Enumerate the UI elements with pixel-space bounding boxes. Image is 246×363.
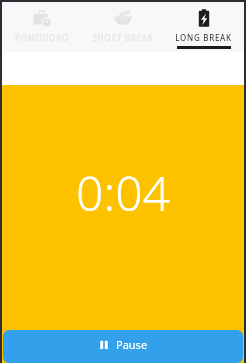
staticText: POMODORO [15,32,69,43]
button[interactable]: LONG BREAK [163,2,244,52]
button[interactable]: SHORT BREAK [82,2,163,52]
button[interactable]: POMODORO [2,2,82,52]
staticText: 0:04 [76,160,170,225]
staticText: LONG BREAK [175,32,232,43]
staticText: SHORT BREAK [92,32,154,43]
button[interactable]: Pause [3,330,243,363]
staticText: Pause [116,337,148,352]
other: Pause [99,340,109,350]
